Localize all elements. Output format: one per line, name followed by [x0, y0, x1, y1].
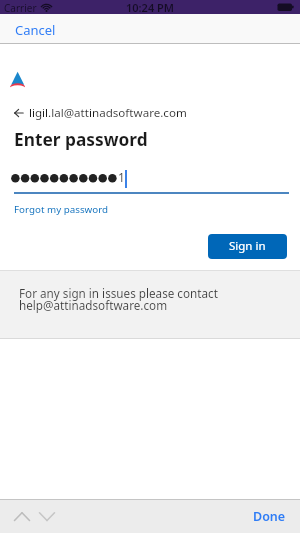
button[interactable]: Cancel	[0, 14, 64, 44]
staticText: 10:24 PM	[126, 0, 175, 14]
staticText: Carrier	[4, 1, 37, 15]
staticText: Sign in	[229, 238, 266, 254]
staticText: Cancel	[15, 21, 56, 39]
button[interactable]	[35, 506, 59, 526]
button[interactable]: Done	[239, 502, 300, 531]
button[interactable]: Forgot my password	[14, 201, 109, 218]
staticText: 1	[118, 169, 125, 185]
staticText: Enter password	[14, 128, 148, 152]
button[interactable]: ligil.lal@attinadsoftware.com	[12, 103, 189, 123]
button[interactable]: Sign in	[208, 234, 287, 259]
staticText: Forgot my password	[14, 203, 109, 216]
staticText: Done	[253, 508, 286, 525]
staticText: ligil.lal@attinadsoftware.com	[29, 105, 187, 121]
staticText: For any sign in issues please contact he…	[19, 285, 218, 313]
button[interactable]	[10, 506, 34, 526]
